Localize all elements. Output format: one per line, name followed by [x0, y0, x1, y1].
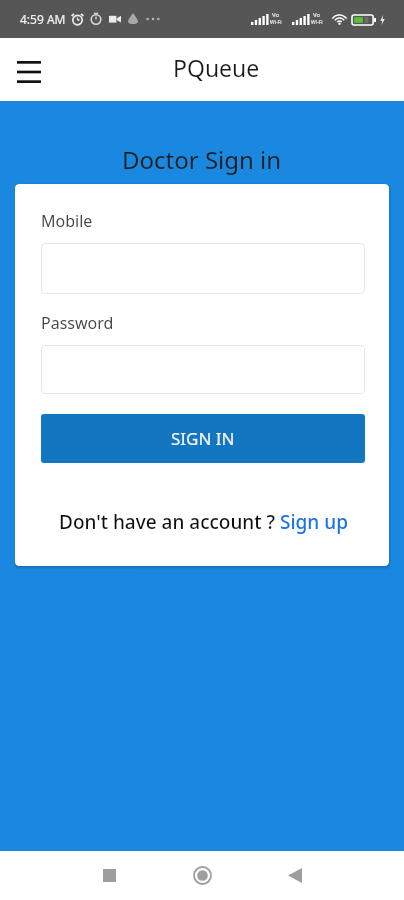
staticText: Wi-Fi: [270, 19, 282, 26]
staticText: Doctor Sign in: [122, 143, 282, 176]
button[interactable]: Back: [265, 851, 325, 900]
staticText: 4:59 AM: [20, 11, 66, 27]
staticText: Password: [41, 312, 114, 334]
button[interactable]: Recent apps: [79, 851, 139, 900]
button[interactable]: Home: [172, 851, 232, 900]
button[interactable]: [41, 345, 365, 394]
button[interactable]: Sign up: [280, 509, 348, 535]
button[interactable]: [41, 243, 365, 294]
staticText: Sign up: [280, 509, 348, 535]
staticText: PQueue: [173, 52, 260, 83]
button[interactable]: SIGN IN: [41, 414, 365, 463]
staticText: Mobile: [41, 210, 93, 232]
staticText: Vo: [313, 11, 321, 19]
staticText: Don't have an account ?: [59, 509, 280, 535]
staticText: SIGN IN: [171, 427, 235, 450]
button[interactable]: Open navigation menu: [7, 50, 51, 94]
staticText: Wi-Fi: [311, 19, 323, 26]
staticText: Vo: [272, 11, 280, 19]
